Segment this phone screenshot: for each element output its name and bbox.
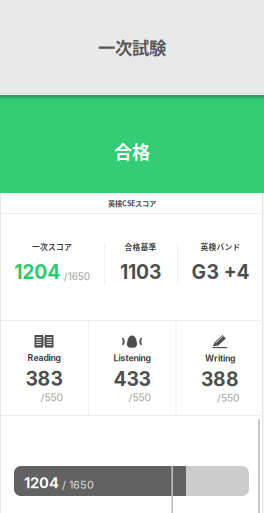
- staticText: 1204: [14, 260, 60, 284]
- staticText: Listening: [113, 353, 150, 363]
- staticText: Writing: [205, 353, 235, 364]
- staticText: 一次スコア: [32, 241, 72, 252]
- staticText: /550: [217, 392, 239, 404]
- staticText: /1650: [64, 270, 90, 283]
- staticText: 英検CSEスコア: [108, 198, 156, 208]
- staticText: 英検バンド: [200, 241, 240, 252]
- staticText: Reading: [27, 353, 60, 363]
- staticText: G3 +4: [191, 260, 249, 284]
- staticText: 433: [113, 367, 150, 391]
- staticText: 合格: [114, 138, 150, 164]
- staticText: / 1650: [62, 478, 94, 491]
- staticText: 383: [25, 367, 62, 390]
- staticText: 1204: [24, 474, 59, 492]
- staticText: 一次試験: [98, 34, 166, 60]
- staticText: /550: [40, 391, 62, 404]
- staticText: 合格基準: [124, 241, 156, 252]
- staticText: 388: [201, 368, 239, 391]
- staticText: 1103: [120, 260, 161, 284]
- staticText: /550: [128, 392, 150, 404]
- button[interactable]: 一次試験: [0, 32, 264, 62]
